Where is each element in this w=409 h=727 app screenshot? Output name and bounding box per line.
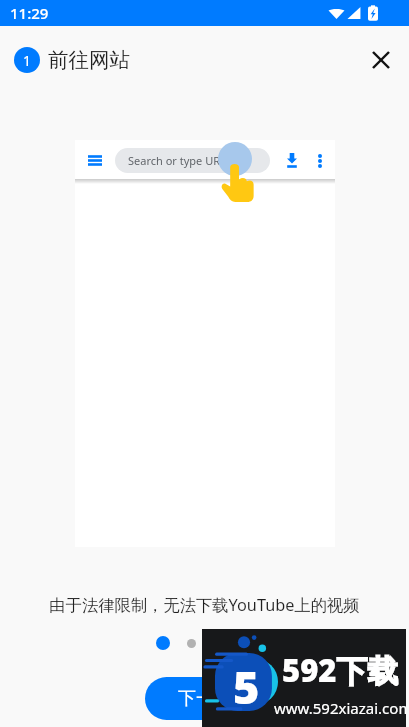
staticText: 11:29 (10, 3, 49, 23)
staticText: Search or type URL (128, 153, 226, 168)
staticText: 1 (23, 51, 32, 70)
staticText: 592下载 (282, 649, 399, 691)
button[interactable]: Close (362, 41, 400, 79)
staticText: 下一步 (178, 687, 232, 710)
staticText: 由于法律限制，无法下载YouTube上的视频 (49, 594, 360, 616)
button[interactable]: 下一步 (145, 677, 264, 720)
staticText: 前往网站 (48, 47, 130, 73)
staticText: 5 (233, 656, 260, 717)
staticText: www.592xiazai.com (274, 698, 409, 718)
